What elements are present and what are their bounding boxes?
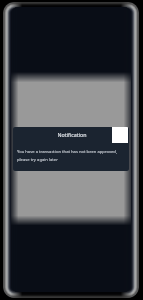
staticText: You have a transaction that has not been…	[17, 149, 118, 162]
staticText: Notification	[14, 131, 129, 138]
button[interactable]: Notification	[13, 127, 129, 171]
